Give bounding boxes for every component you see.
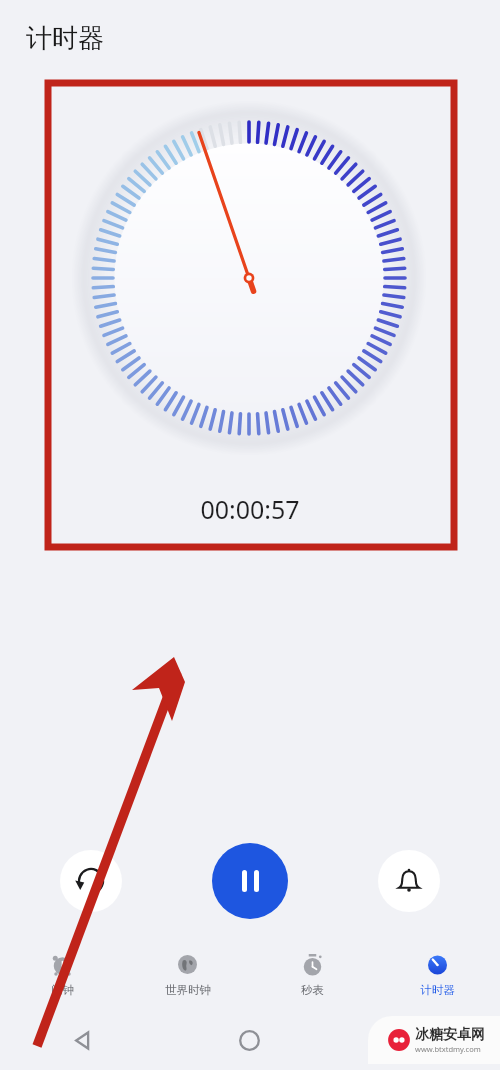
staticText: 00:00:57 [0, 492, 500, 526]
button[interactable]: 秒表 [250, 940, 375, 1008]
button[interactable]: Recent apps [333, 1012, 500, 1068]
staticText: 冰糖安卓网 [415, 1026, 485, 1044]
staticText: 世界时钟 [165, 983, 211, 997]
button[interactable]: Reset [60, 850, 122, 912]
button[interactable]: 闹钟 [0, 940, 125, 1008]
button[interactable]: 世界时钟 [125, 940, 250, 1008]
staticText: 秒表 [301, 983, 324, 997]
button[interactable]: Home [166, 1012, 333, 1068]
button[interactable]: Ringtone [378, 850, 440, 912]
button[interactable]: Back [0, 1012, 166, 1068]
button[interactable]: 计时器 [375, 940, 500, 1008]
staticText: 计时器 [420, 983, 455, 997]
button[interactable]: Pause [212, 843, 288, 919]
staticText: 计时器 [26, 22, 104, 55]
staticText: www.btxtdmy.com [415, 1044, 481, 1054]
staticText: 闹钟 [51, 983, 74, 997]
